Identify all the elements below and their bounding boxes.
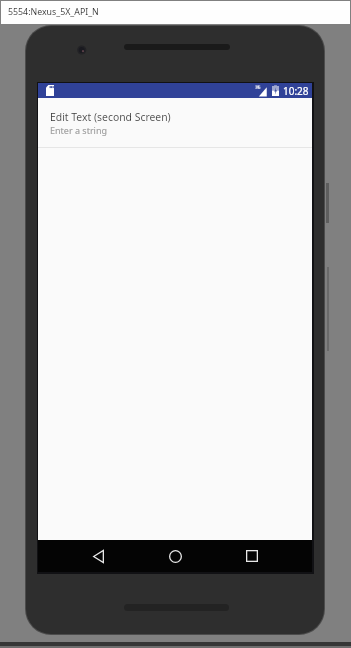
- button[interactable]: Back: [82, 540, 114, 572]
- staticText: Enter a string: [50, 124, 108, 136]
- button[interactable]: Recent apps: [236, 540, 268, 572]
- staticText: 5554:Nexus_5X_API_N: [8, 6, 99, 18]
- button[interactable]: Home: [159, 540, 191, 572]
- staticText: Edit Text (second Screen): [50, 110, 171, 124]
- staticText: 10:28: [283, 84, 309, 98]
